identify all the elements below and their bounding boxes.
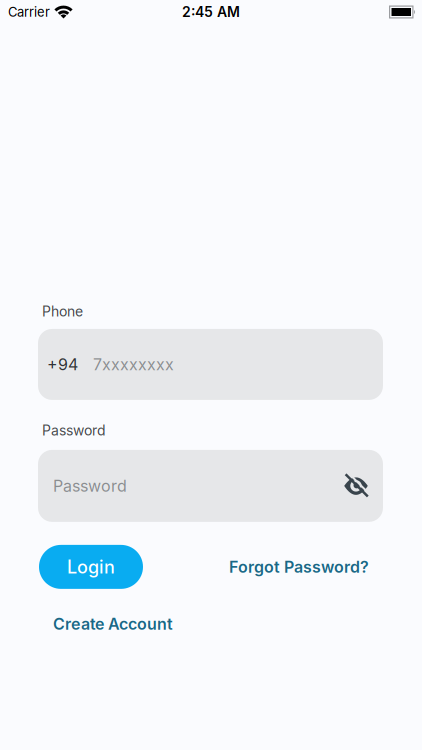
staticText: 2:45 AM [182,3,240,20]
button[interactable]: Show password [344,473,368,499]
staticText: Create Account [53,614,173,634]
button[interactable]: Login [39,545,143,589]
staticText: 7xxxxxxxx [93,355,174,374]
staticText: Password [42,422,106,439]
staticText: Password [53,476,127,496]
staticText: +94 [47,355,78,374]
staticText: Phone [42,303,83,320]
staticText: Forgot Password? [229,557,369,577]
button[interactable]: Create Account [38,609,188,639]
staticText: Login [67,556,115,578]
button[interactable]: Forgot Password? [229,557,369,577]
staticText: Carrier [8,4,50,20]
